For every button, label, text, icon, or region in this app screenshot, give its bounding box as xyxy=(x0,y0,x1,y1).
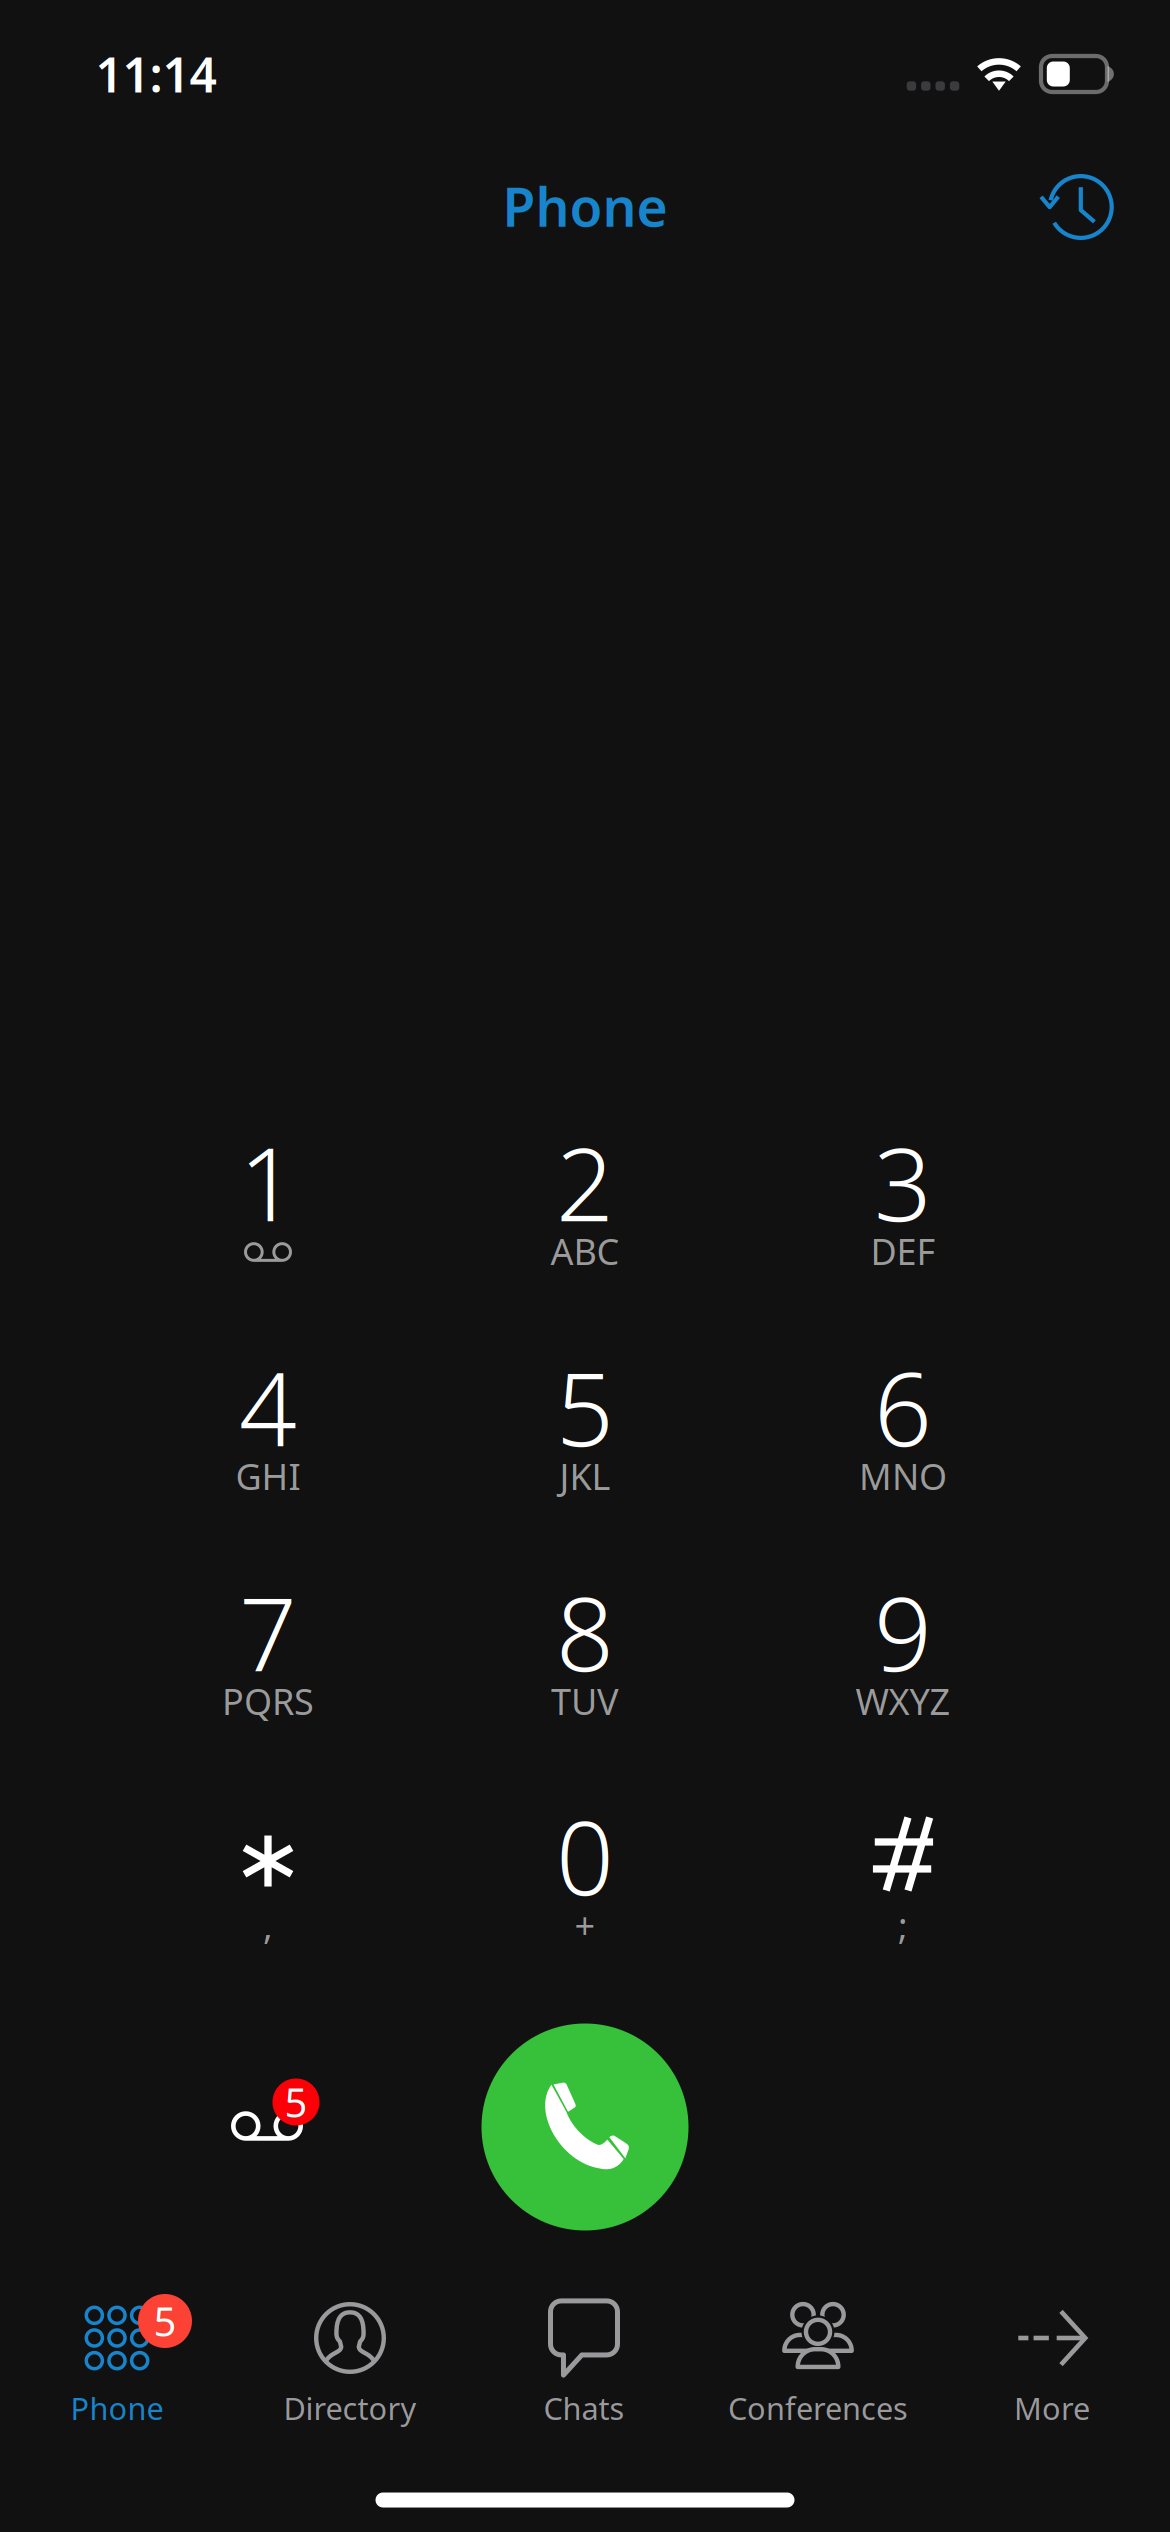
button[interactable]: ; xyxy=(753,1797,1053,2012)
staticText: 9 xyxy=(874,1565,932,1699)
staticText: 5 xyxy=(153,2294,176,2347)
staticText: 2 xyxy=(556,1115,614,1249)
button[interactable]: 0 xyxy=(435,1797,735,2012)
button[interactable]: Call history xyxy=(1012,142,1142,272)
button[interactable]: 5 xyxy=(435,1348,735,1563)
button[interactable]: Directory xyxy=(235,2282,465,2442)
staticText: 3 xyxy=(874,1115,932,1249)
staticText: Phone xyxy=(502,171,667,241)
staticText: 6 xyxy=(874,1340,932,1474)
staticText: Conferences xyxy=(728,2388,908,2428)
staticText: 4 xyxy=(239,1340,297,1474)
button[interactable]: 8 xyxy=(435,1573,735,1788)
staticText: ; xyxy=(898,1901,908,1949)
staticText: TUV xyxy=(551,1677,619,1725)
staticText: More xyxy=(1014,2388,1090,2428)
button[interactable]: 9 xyxy=(753,1573,1053,1788)
button[interactable]: 6 xyxy=(753,1348,1053,1563)
staticText: 5 xyxy=(284,2075,307,2128)
staticText: JKL xyxy=(559,1452,610,1500)
button[interactable]: 2 xyxy=(435,1123,735,1338)
button[interactable]: , xyxy=(118,1797,418,2012)
staticText: Phone xyxy=(70,2388,163,2428)
button[interactable]: 1 xyxy=(118,1123,418,1338)
staticText: 0 xyxy=(556,1789,614,1923)
staticText: Directory xyxy=(283,2388,416,2428)
staticText: PQRS xyxy=(222,1677,314,1725)
button[interactable]: Voicemail xyxy=(172,2047,362,2207)
staticText: DEF xyxy=(870,1227,935,1275)
button[interactable]: 3 xyxy=(753,1123,1053,1338)
button[interactable]: Conferences xyxy=(703,2282,933,2442)
staticText: MNO xyxy=(859,1452,947,1500)
staticText: 8 xyxy=(556,1565,614,1699)
staticText: 7 xyxy=(239,1565,297,1699)
staticText: Chats xyxy=(543,2388,624,2428)
staticText: 11:14 xyxy=(95,42,216,106)
button[interactable]: 5 xyxy=(2,2282,232,2442)
staticText: , xyxy=(263,1901,273,1949)
staticText: 5 xyxy=(556,1340,614,1474)
button[interactable]: Chats xyxy=(469,2282,699,2442)
staticText: + xyxy=(574,1901,595,1949)
staticText: GHI xyxy=(235,1452,300,1500)
button[interactable]: 4 xyxy=(118,1348,418,1563)
button[interactable]: Call xyxy=(481,2023,688,2230)
staticText: 1 xyxy=(239,1115,297,1249)
staticText: WXYZ xyxy=(855,1677,950,1725)
button[interactable]: More xyxy=(937,2282,1167,2442)
button[interactable]: 7 xyxy=(118,1573,418,1788)
staticText: ABC xyxy=(550,1227,619,1275)
